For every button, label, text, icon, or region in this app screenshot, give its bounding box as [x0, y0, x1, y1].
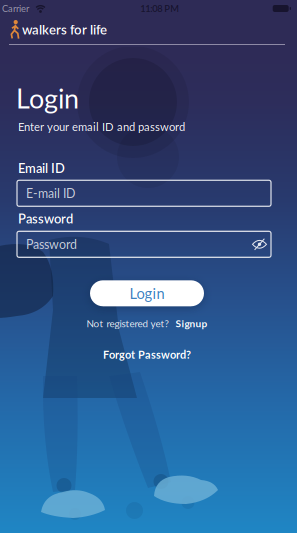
button[interactable]: Show password	[251, 238, 268, 250]
staticText: Password	[26, 237, 77, 252]
staticText: E-mail ID	[26, 186, 75, 201]
staticText: Enter your email ID and password	[18, 120, 185, 133]
staticText: Forgot Password?	[103, 348, 191, 361]
staticText: Login	[129, 284, 164, 302]
staticText: Password	[18, 211, 73, 226]
staticText: Not registered yet?	[86, 317, 168, 329]
button[interactable]: Login	[90, 280, 204, 306]
staticText: Carrier	[2, 3, 29, 14]
staticText: Login	[16, 82, 79, 114]
button[interactable]: Forgot Password?	[103, 348, 191, 361]
staticText: Email ID	[18, 160, 65, 176]
staticText: Signup	[175, 317, 207, 329]
staticText: walkers for life	[22, 22, 107, 37]
staticText: 11:08 PM	[140, 3, 179, 14]
button[interactable]: Signup	[175, 317, 207, 329]
